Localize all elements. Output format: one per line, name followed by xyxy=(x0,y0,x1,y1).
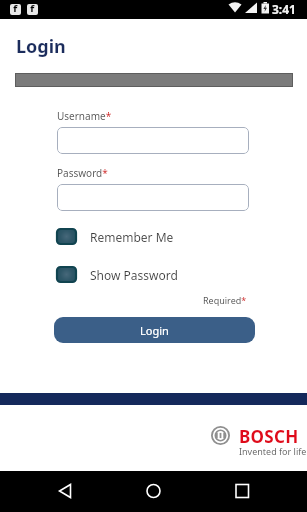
staticText: f xyxy=(13,4,18,12)
button[interactable] xyxy=(133,471,173,512)
button[interactable] xyxy=(57,184,249,211)
staticText: Username* xyxy=(57,109,112,123)
staticText: Password* xyxy=(57,166,108,180)
button[interactable] xyxy=(57,127,249,154)
button[interactable] xyxy=(222,471,262,512)
staticText: Remember Me xyxy=(90,229,174,245)
staticText: f xyxy=(30,4,35,12)
staticText: Required* xyxy=(203,294,247,306)
staticText: Invented for life xyxy=(239,445,307,457)
button[interactable]: Login xyxy=(54,317,255,343)
staticText: Login xyxy=(16,34,66,59)
staticText: BOSCH xyxy=(239,425,299,448)
staticText: Show Password xyxy=(90,267,178,283)
button[interactable] xyxy=(57,229,76,244)
staticText: Login xyxy=(140,323,169,338)
staticText: 3:41 xyxy=(272,1,296,17)
button[interactable] xyxy=(57,267,76,282)
button[interactable] xyxy=(45,471,85,512)
